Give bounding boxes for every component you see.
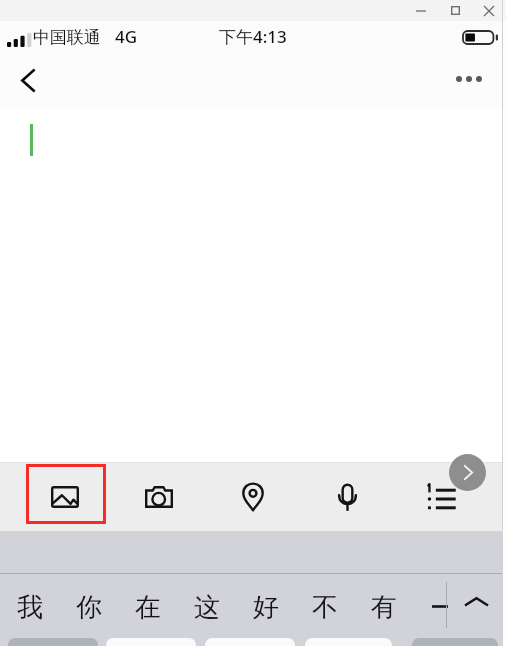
button[interactable]: Back [0,56,54,108]
button[interactable]: 我 [0,581,59,633]
staticText: 下午4:13 [219,25,287,48]
button[interactable] [205,638,295,646]
button[interactable]: 在 [118,581,177,633]
staticText: 你 [76,591,102,624]
staticText: 有 [371,591,397,624]
button[interactable]: Voice [314,467,380,527]
staticText: 这 [194,591,220,624]
button[interactable] [106,638,196,646]
button[interactable]: Location [220,467,286,527]
button[interactable]: Minimize [404,0,438,21]
button[interactable]: Album [26,464,106,524]
button[interactable]: Collapse candidates [413,581,446,633]
button[interactable]: Hide keyboard [447,581,506,633]
button[interactable]: More options [452,56,506,108]
button[interactable]: 好 [236,581,295,633]
button[interactable] [305,638,392,646]
button[interactable]: 这 [177,581,236,633]
staticText: 好 [253,591,279,624]
button[interactable]: List [408,469,474,529]
button[interactable]: Camera [126,467,192,527]
button[interactable]: Maximize [438,0,472,21]
staticText: 4G [115,25,138,48]
button[interactable]: Close [472,0,506,21]
button[interactable]: Next [449,454,486,491]
staticText: 不 [312,591,338,624]
staticText: 在 [135,591,161,624]
button[interactable] [8,638,98,646]
button[interactable]: 你 [59,581,118,633]
staticText: 中国联通 [33,27,101,48]
staticText: 我 [17,591,43,624]
button[interactable]: 不 [295,581,354,633]
button[interactable]: 有 [354,581,413,633]
button[interactable] [412,638,498,646]
